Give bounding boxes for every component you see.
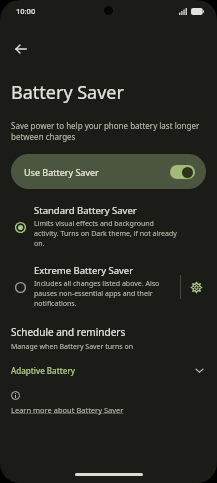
staticText: Includes all changes listed above. Also … [34,279,180,309]
staticText: Battery Saver [11,80,124,105]
staticText: Adaptive Battery [11,365,195,376]
staticText: Limits visual effects and background act… [34,219,180,249]
button[interactable]: Adaptive Battery [0,363,217,378]
button[interactable]: Extreme Battery Saver [0,260,217,313]
staticText: 10:00 [16,6,36,16]
button[interactable]: Use Battery Saver [11,154,206,189]
staticText: Standard Battery Saver [34,204,137,217]
button[interactable]: Extreme Battery Saver settings [181,272,211,302]
button[interactable]: Back [6,34,36,64]
button[interactable]: Learn more about Battery Saver [11,405,124,415]
staticText: Save power to help your phone battery la… [11,120,203,142]
button[interactable]: Standard Battery Saver [0,200,217,253]
staticText: Manage when Battery Saver turns on [11,342,134,352]
staticText: Use Battery Saver [24,166,170,178]
staticText: Schedule and reminders [11,325,126,339]
staticText: Extreme Battery Saver [34,264,134,277]
staticText: Learn more about Battery Saver [11,405,124,415]
